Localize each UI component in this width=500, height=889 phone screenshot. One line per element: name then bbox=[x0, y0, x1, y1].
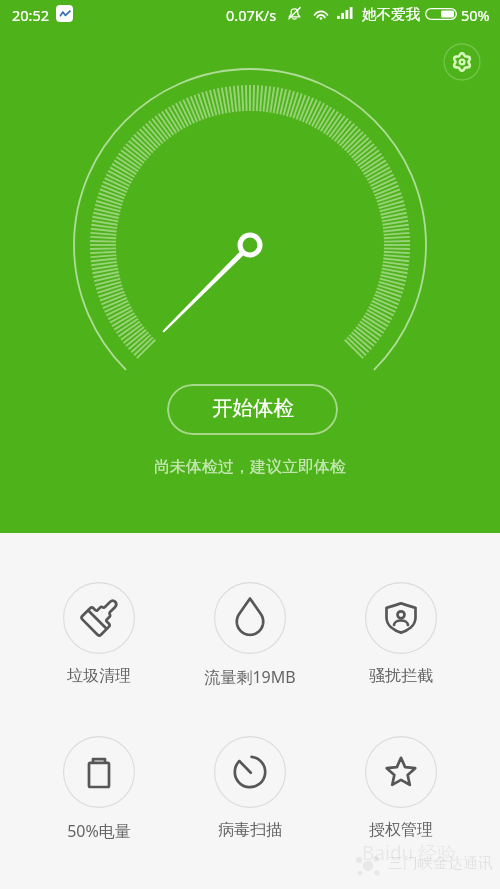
staticText: 50%电量 bbox=[67, 820, 131, 842]
staticText: 50% bbox=[461, 5, 490, 25]
button[interactable]: 50%电量 bbox=[37, 736, 161, 842]
staticText: 0.07K/s bbox=[226, 5, 277, 25]
button[interactable]: 授权管理 bbox=[339, 736, 463, 840]
staticText: 病毒扫描 bbox=[218, 820, 282, 840]
staticText: 20:52 bbox=[12, 5, 50, 25]
staticText: 开始体检 bbox=[212, 395, 294, 421]
staticText: 授权管理 bbox=[369, 820, 433, 840]
staticText: 她不爱我 bbox=[362, 5, 420, 23]
staticText: 流量剩19MB bbox=[204, 666, 296, 688]
staticText: 骚扰拦截 bbox=[369, 666, 433, 686]
staticText: 三门峡金达通讯 bbox=[388, 854, 493, 873]
staticText: 尚未体检过，建议立即体检 bbox=[154, 457, 346, 477]
button[interactable]: 垃圾清理 bbox=[37, 582, 161, 686]
button[interactable]: Settings bbox=[443, 43, 481, 81]
staticText: Baidu 经验 bbox=[362, 840, 457, 866]
button[interactable]: 骚扰拦截 bbox=[339, 582, 463, 686]
button[interactable]: 流量剩19MB bbox=[188, 582, 312, 688]
staticText: 垃圾清理 bbox=[67, 666, 131, 686]
button[interactable]: 开始体检 bbox=[167, 384, 338, 435]
button[interactable]: 病毒扫描 bbox=[188, 736, 312, 840]
